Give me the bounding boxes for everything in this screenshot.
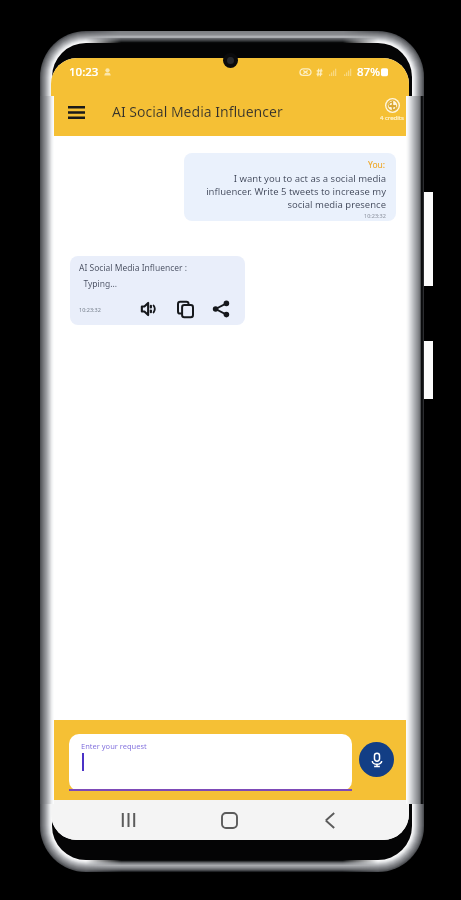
staticText: 10:23 xyxy=(69,64,99,80)
staticText: 4 credits xyxy=(380,114,404,122)
staticText: 10:23:32 xyxy=(79,306,101,313)
button[interactable]: Enter your request xyxy=(69,734,352,791)
button[interactable]: AI Social Media Influencer : xyxy=(70,256,245,325)
button[interactable]: Microphone xyxy=(359,742,394,777)
staticText: Typing... xyxy=(79,278,118,290)
staticText: AI Social Media Influencer : xyxy=(79,262,188,274)
staticText: You: xyxy=(368,159,386,171)
staticText: Enter your request xyxy=(81,741,147,751)
staticText: AI Social Media Influencer xyxy=(112,102,283,121)
button[interactable]: Copy xyxy=(175,299,195,319)
button[interactable]: Home xyxy=(209,800,249,840)
staticText: I want you to act as a social media infl… xyxy=(194,172,386,211)
button[interactable]: Credits xyxy=(375,96,409,124)
staticText: 87% xyxy=(357,64,380,80)
button[interactable]: Menu xyxy=(59,95,93,129)
staticText: 10:23:32 xyxy=(364,212,386,219)
button[interactable]: You: xyxy=(184,153,396,221)
button[interactable]: Read aloud xyxy=(139,299,159,319)
button[interactable]: Share xyxy=(211,299,231,319)
button[interactable]: Back xyxy=(310,800,350,840)
button[interactable]: Recent apps xyxy=(108,800,148,840)
